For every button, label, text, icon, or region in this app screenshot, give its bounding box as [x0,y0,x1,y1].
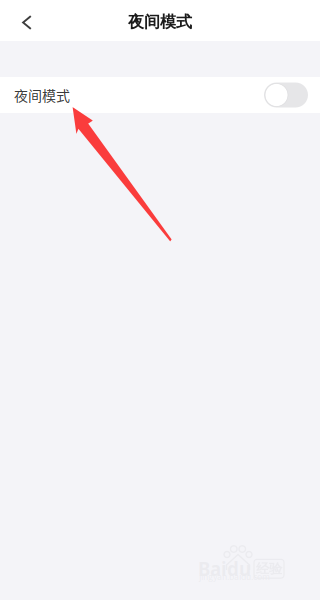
staticText: jingyan.baidu.com [199,570,270,582]
staticText: 夜间模式 [128,12,192,32]
button[interactable]: Back [0,0,56,41]
staticText: 夜间模式 [14,85,70,105]
button[interactable]: 夜间模式 [0,77,320,113]
staticText: 经验 [256,560,282,577]
staticText: Baidu [198,556,251,581]
